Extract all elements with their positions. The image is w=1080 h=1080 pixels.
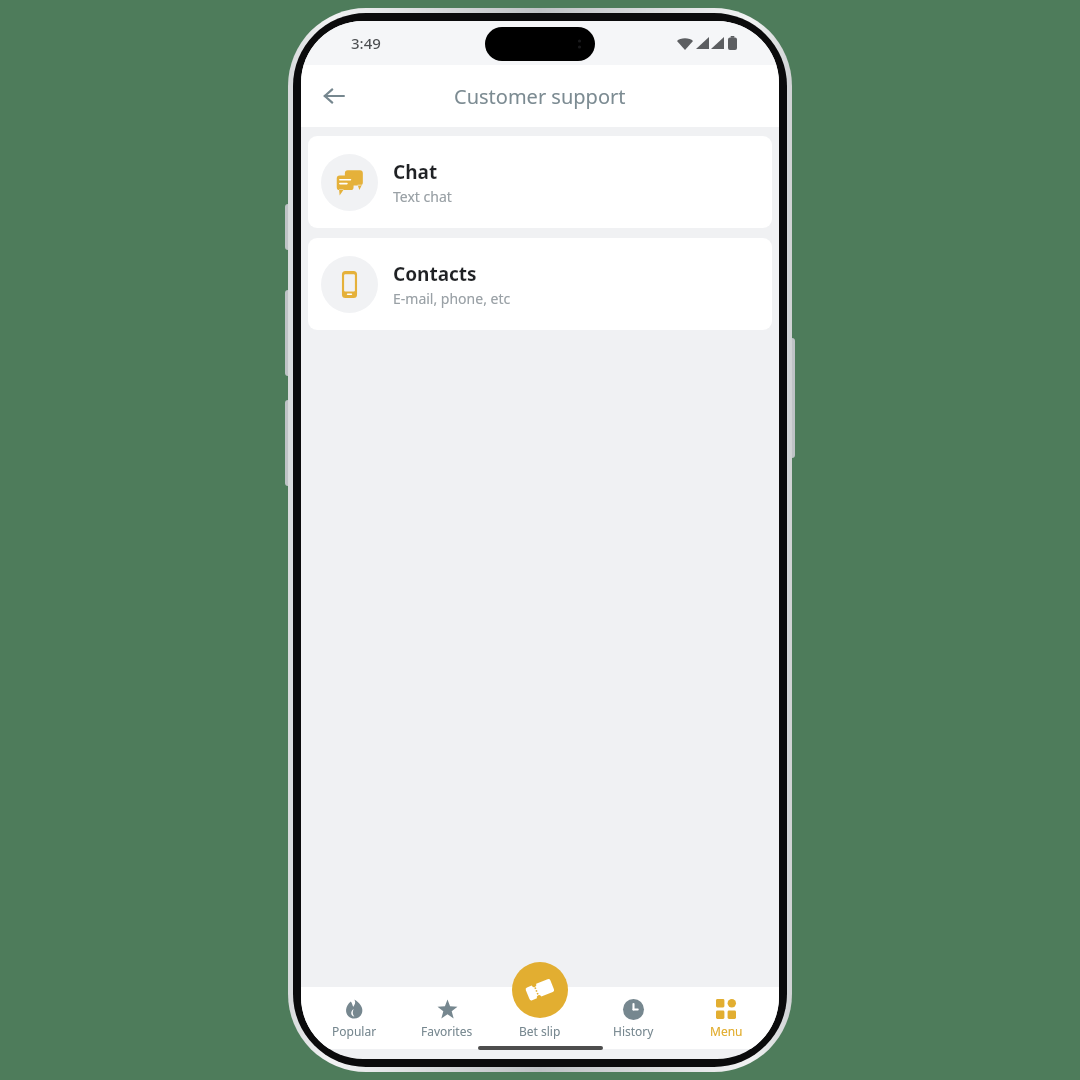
staticText: 3:49	[351, 33, 381, 53]
staticText: Chat	[393, 159, 438, 185]
staticText: Bet slip	[519, 1023, 561, 1039]
button[interactable]: Chat	[308, 136, 772, 228]
staticText: Favorites	[421, 1023, 473, 1039]
button[interactable]: History	[593, 994, 673, 1043]
button[interactable]: Contacts	[308, 238, 772, 330]
staticText: E-mail, phone, etc	[393, 289, 511, 308]
staticText: Text chat	[393, 187, 452, 206]
staticText: History	[613, 1023, 654, 1039]
button[interactable]: Bet slip	[500, 994, 580, 1043]
button[interactable]: Menu	[686, 994, 766, 1043]
button[interactable]: Bet slip	[512, 962, 568, 1018]
button[interactable]: Favorites	[407, 994, 487, 1043]
staticText: Customer support	[454, 83, 626, 110]
button[interactable]: Back	[311, 73, 357, 119]
button[interactable]: Popular	[314, 994, 394, 1043]
staticText: Contacts	[393, 261, 477, 287]
staticText: Popular	[332, 1023, 377, 1039]
staticText: Menu	[710, 1023, 743, 1039]
